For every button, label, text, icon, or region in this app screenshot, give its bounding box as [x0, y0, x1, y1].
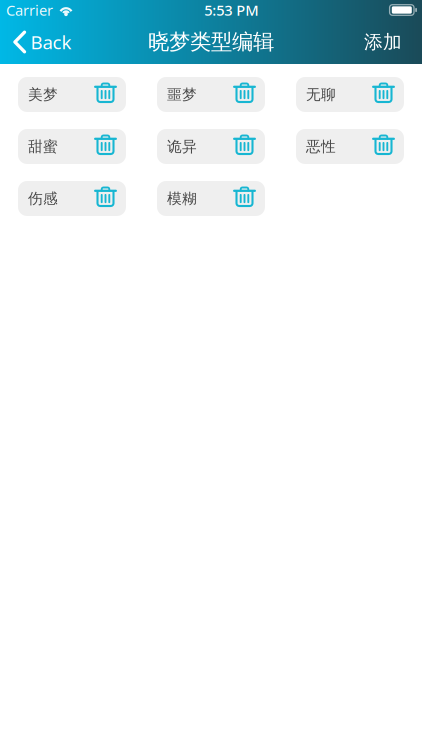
- staticText: 甜蜜: [28, 137, 58, 155]
- staticText: 诡异: [167, 137, 197, 155]
- button[interactable]: 伤感: [18, 181, 126, 216]
- button[interactable]: 添加: [352, 20, 422, 64]
- button[interactable]: 甜蜜: [18, 129, 126, 164]
- staticText: 伤感: [28, 189, 58, 207]
- button[interactable]: 噩梦: [157, 77, 265, 112]
- staticText: 噩梦: [167, 85, 197, 103]
- staticText: Carrier: [6, 0, 53, 20]
- staticText: Back: [30, 30, 71, 54]
- button[interactable]: 美梦: [18, 77, 126, 112]
- button[interactable]: 诡异: [157, 129, 265, 164]
- staticText: 添加: [364, 30, 402, 53]
- staticText: 美梦: [28, 85, 58, 103]
- button[interactable]: Back: [0, 20, 81, 64]
- staticText: 模糊: [167, 189, 197, 207]
- staticText: 恶性: [306, 137, 336, 155]
- button[interactable]: 无聊: [296, 77, 404, 112]
- staticText: 无聊: [306, 85, 336, 103]
- staticText: 晓梦类型编辑: [148, 29, 274, 55]
- button[interactable]: 恶性: [296, 129, 404, 164]
- staticText: 5:53 PM: [204, 0, 258, 20]
- button[interactable]: 模糊: [157, 181, 265, 216]
